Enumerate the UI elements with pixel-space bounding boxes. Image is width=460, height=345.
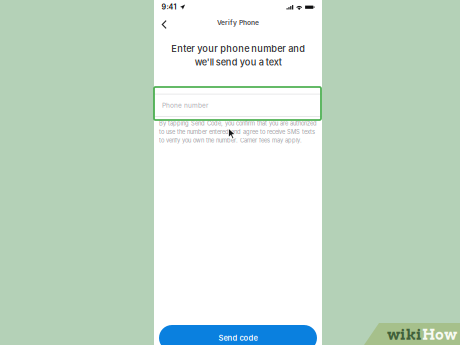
staticText: Verify Phone <box>217 18 259 27</box>
staticText: By tapping Send Code, you confirm that y… <box>159 120 317 144</box>
staticText: How <box>422 326 457 343</box>
button[interactable]: Phone number <box>154 95 322 116</box>
staticText: wiki <box>387 326 422 343</box>
staticText: Phone number <box>162 101 208 109</box>
staticText: Send code <box>218 333 257 343</box>
button[interactable]: Back <box>157 14 175 31</box>
button[interactable]: Send code <box>159 325 317 345</box>
staticText: Enter your phone number and we'll send y… <box>171 43 305 68</box>
staticText: 9:41 <box>161 3 176 11</box>
